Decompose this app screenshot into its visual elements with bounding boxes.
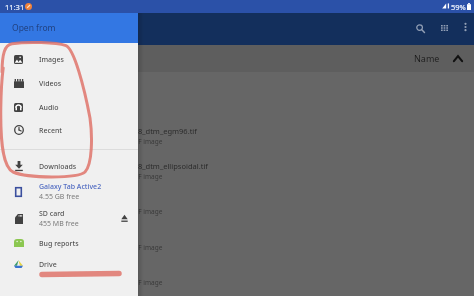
button[interactable]: Name	[414, 52, 463, 64]
button[interactable]: Grid view	[435, 19, 453, 37]
button[interactable]: Bug reports	[0, 232, 138, 256]
staticText: 4.55 GB free	[39, 192, 80, 202]
button[interactable]: Search	[411, 19, 429, 37]
staticText: Recent	[39, 126, 62, 136]
button[interactable]: Eject SD card	[113, 207, 135, 229]
staticText: TIFF image	[129, 137, 163, 146]
button[interactable]: Downloads	[0, 155, 138, 179]
staticText: Name	[414, 52, 440, 64]
staticText: 59%	[451, 2, 466, 12]
button[interactable]: TIFF image	[0, 220, 474, 255]
button[interactable]: Drive	[0, 253, 138, 277]
staticText: TIFF image	[129, 172, 163, 181]
staticText: Open from	[12, 22, 56, 34]
staticText: Downloads	[39, 162, 77, 172]
button[interactable]: TIFF image	[0, 255, 474, 290]
staticText: Galaxy Tab Active2	[39, 182, 102, 192]
button[interactable]: Images	[0, 48, 138, 72]
staticText: TIFF image	[129, 278, 163, 287]
button[interactable]: SD card	[0, 205, 138, 232]
button[interactable]: TIFF image	[0, 184, 474, 219]
button[interactable]: Galaxy Tab Active2	[0, 178, 138, 205]
staticText: 455 MB free	[39, 219, 79, 229]
staticText: 11:31	[5, 2, 25, 12]
staticText: Audio	[39, 103, 59, 113]
button[interactable]: More options	[457, 19, 473, 35]
staticText: SD card	[39, 209, 65, 219]
button[interactable]: n28_dtm_egm96.tif	[0, 114, 474, 149]
button[interactable]: Recent	[0, 119, 138, 143]
staticText: Drive	[39, 260, 57, 270]
staticText: n28_dtm_ellipsoidal.tif	[129, 161, 208, 171]
staticText: TIFF image	[129, 243, 163, 252]
button[interactable]: Audio	[0, 96, 138, 120]
staticText: Bug reports	[39, 239, 79, 249]
staticText: Images	[39, 55, 64, 65]
staticText: TIFF image	[129, 207, 163, 216]
button[interactable]: n28_dtm_ellipsoidal.tif	[0, 149, 474, 184]
staticText: n28_dtm_egm96.tif	[129, 126, 197, 136]
button[interactable]: Videos	[0, 72, 138, 96]
staticText: Videos	[39, 79, 62, 89]
